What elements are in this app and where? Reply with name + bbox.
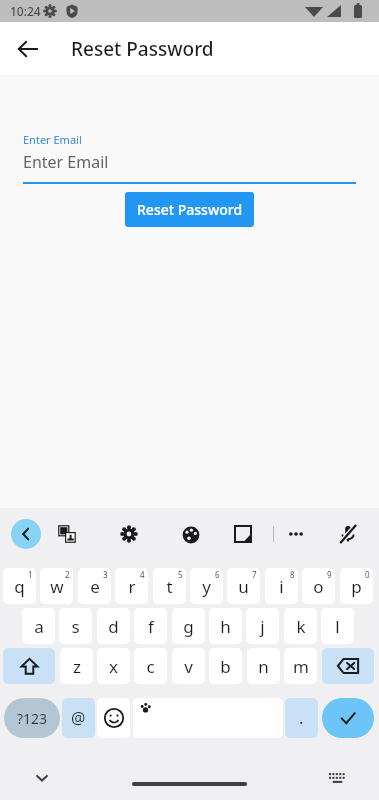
staticText: 7 <box>252 569 257 580</box>
staticText: j <box>260 615 265 638</box>
staticText: ?123 <box>17 709 48 728</box>
button[interactable]: k <box>284 608 317 644</box>
staticText: d <box>108 615 119 638</box>
staticText: 9 <box>327 569 332 580</box>
button[interactable]: w <box>40 568 73 604</box>
button[interactable]: q <box>3 568 36 604</box>
button[interactable]: v <box>172 648 205 684</box>
staticText: 5 <box>178 569 183 580</box>
button[interactable]: Translate <box>52 519 82 549</box>
staticText: 2 <box>65 569 70 580</box>
staticText: x <box>109 655 118 678</box>
staticText: w <box>50 575 64 598</box>
staticText: z <box>73 655 81 678</box>
staticText: h <box>220 615 231 638</box>
staticText: l <box>335 615 340 638</box>
button[interactable]: Shift <box>3 648 55 684</box>
button[interactable]: t <box>153 568 186 604</box>
button[interactable]: . <box>285 698 318 738</box>
staticText: r <box>128 575 136 598</box>
button[interactable]: d <box>97 608 130 644</box>
staticText: f <box>148 615 154 638</box>
button[interactable]: l <box>321 608 354 644</box>
button[interactable]: Backspace <box>322 648 374 684</box>
staticText: m <box>293 655 309 678</box>
staticText: 4 <box>140 569 145 580</box>
staticText: Enter Email <box>23 151 109 173</box>
button[interactable]: Enter Email <box>23 132 356 184</box>
staticText: o <box>313 575 324 598</box>
staticText: 0 <box>365 569 370 580</box>
staticText: y <box>202 575 211 598</box>
staticText: k <box>296 615 306 638</box>
button[interactable]: e <box>78 568 111 604</box>
button[interactable]: Voice input off <box>333 519 363 549</box>
button[interactable]: r <box>115 568 148 604</box>
button[interactable]: p <box>340 568 373 604</box>
staticText: Reset Password <box>137 200 243 219</box>
button[interactable]: More options <box>281 519 311 549</box>
button[interactable]: u <box>227 568 260 604</box>
button[interactable]: y <box>190 568 223 604</box>
button[interactable]: g <box>172 608 205 644</box>
button[interactable]: i <box>265 568 298 604</box>
button[interactable]: Back <box>6 27 49 70</box>
button[interactable]: f <box>134 608 167 644</box>
button[interactable]: m <box>284 648 317 684</box>
staticText: . <box>299 707 304 729</box>
staticText: 8 <box>290 569 295 580</box>
staticText: Enter Email <box>23 132 82 147</box>
button[interactable]: Hide keyboard <box>27 763 57 793</box>
staticText: 1 <box>28 569 33 580</box>
button[interactable]: Reset Password <box>125 192 254 227</box>
button[interactable]: Switch keyboard <box>322 763 352 793</box>
staticText: p <box>351 575 362 598</box>
button[interactable]: z <box>60 648 93 684</box>
button[interactable]: b <box>209 648 242 684</box>
button[interactable]: ?123 <box>4 698 60 738</box>
staticText: Reset Password <box>71 36 214 62</box>
staticText: u <box>238 575 249 598</box>
staticText: s <box>71 615 80 638</box>
button[interactable]: a <box>22 608 55 644</box>
button[interactable]: Settings <box>114 519 144 549</box>
button[interactable]: c <box>134 648 167 684</box>
staticText: 6 <box>215 569 220 580</box>
staticText: 3 <box>103 569 108 580</box>
staticText: v <box>184 655 193 678</box>
button[interactable]: Enter <box>322 698 374 738</box>
staticText: g <box>183 615 194 638</box>
staticText: n <box>258 655 269 678</box>
button[interactable]: j <box>246 608 279 644</box>
button[interactable]: Clipboard <box>228 519 258 549</box>
button[interactable]: s <box>59 608 92 644</box>
button[interactable]: Emoji <box>97 698 130 738</box>
button[interactable]: Space <box>133 698 283 738</box>
button[interactable]: Themes <box>176 519 206 549</box>
staticText: a <box>34 615 44 638</box>
button[interactable]: x <box>97 648 130 684</box>
staticText: 10:24 <box>10 3 41 19</box>
staticText: t <box>166 575 173 598</box>
button[interactable]: n <box>247 648 280 684</box>
button[interactable]: o <box>302 568 335 604</box>
staticText: i <box>279 575 284 598</box>
button[interactable]: Back <box>11 519 41 549</box>
staticText: c <box>146 655 155 678</box>
staticText: q <box>14 575 25 598</box>
button[interactable]: @ <box>62 698 95 738</box>
staticText: b <box>220 655 231 678</box>
button[interactable]: h <box>209 608 242 644</box>
staticText: e <box>90 575 100 598</box>
staticText: @ <box>71 707 86 729</box>
